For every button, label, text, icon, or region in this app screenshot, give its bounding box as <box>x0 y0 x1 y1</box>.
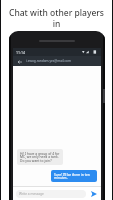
button[interactable]: Back <box>16 58 23 65</box>
staticText: Hi! I have a group of 4 for MC, we only … <box>20 151 60 163</box>
button[interactable]: Send <box>89 189 98 198</box>
staticText: 11:14 <box>16 50 25 55</box>
button[interactable]: Back <box>13 56 101 66</box>
staticText: Chat with other players in <box>6 7 107 29</box>
staticText: WoW Classic <box>31 30 82 42</box>
button[interactable]: Write a message <box>16 190 86 198</box>
button[interactable]: Sure! I'll be there in ten minutes. <box>51 170 97 182</box>
staticText: Write a message <box>19 192 44 196</box>
button[interactable]: Hi! I have a group of 4 for MC, we only … <box>17 149 63 165</box>
staticText: Sure! I'll be there in ten minutes. <box>54 172 94 180</box>
staticText: i.ewog.random.yes@mail.com <box>26 59 71 63</box>
